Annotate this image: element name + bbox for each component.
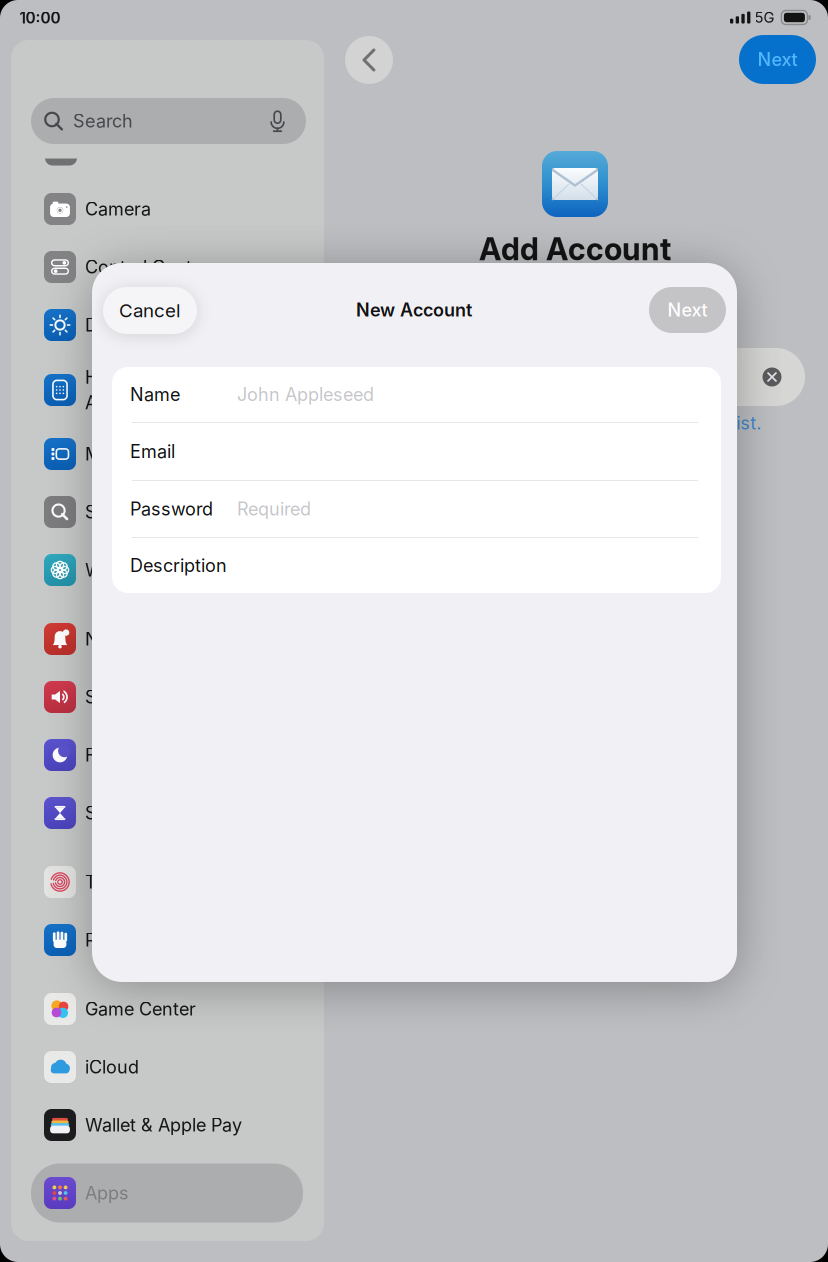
staticText: Screen Time (85, 802, 191, 824)
button[interactable]: Sounds (31, 667, 303, 726)
button[interactable]: Wallet & Apple Pay (31, 1095, 303, 1154)
staticText: Add Account (479, 230, 671, 267)
button[interactable]: Home Screen & (31, 360, 303, 419)
button[interactable]: Search (31, 98, 306, 144)
button[interactable]: Back (345, 36, 393, 84)
staticText: Touch ID & Passcode (85, 871, 266, 893)
button[interactable]: Cancel (103, 287, 197, 334)
staticText: Cancel (119, 299, 181, 322)
staticText: Wallet & Apple Pay (85, 1114, 242, 1136)
staticText: Sounds (85, 686, 151, 708)
button[interactable]: Focus (31, 725, 303, 784)
staticText: Search (73, 110, 133, 132)
staticText: Search (85, 501, 145, 523)
staticText: Focus (85, 744, 137, 766)
button[interactable]: Next (739, 35, 816, 84)
button[interactable]: Password (112, 481, 721, 537)
button[interactable]: Game Center (31, 979, 303, 1038)
staticText: Multitasking & Gestures (85, 443, 287, 465)
staticText: list. (732, 412, 761, 434)
button[interactable]: Name (112, 367, 721, 422)
staticText: John Appleseed (237, 384, 374, 405)
staticText: Description (130, 555, 227, 576)
staticText: Notifications (85, 628, 193, 650)
button[interactable]: Description (112, 538, 721, 593)
staticText: New Account (356, 299, 472, 321)
button[interactable]: Privacy & Security (31, 910, 303, 969)
staticText: Game Center (85, 998, 196, 1020)
staticText: Required (237, 498, 311, 520)
button[interactable]: Display & Brightness (31, 295, 303, 354)
staticText: 5G (755, 9, 775, 26)
button[interactable]: Search (31, 482, 303, 541)
button[interactable]: Clear text (759, 364, 785, 390)
button[interactable]: Next (649, 287, 726, 333)
button[interactable]: Touch ID & Passcode (31, 852, 303, 911)
staticText: Apps (85, 1182, 129, 1204)
button[interactable]: Multitasking & Gestures (31, 424, 303, 483)
button[interactable]: Control Center (31, 237, 303, 296)
staticText: Name (130, 384, 180, 405)
staticText: App Library (85, 392, 183, 414)
staticText: Camera (85, 198, 151, 220)
button[interactable]: Email (112, 423, 721, 480)
staticText: Email (130, 441, 175, 462)
staticText: Control Center (85, 256, 209, 278)
staticText: 10:00 (19, 9, 60, 27)
staticText: Home Screen & (85, 366, 216, 388)
staticText: iCloud (85, 1056, 139, 1078)
staticText: Password (130, 498, 213, 520)
staticText: Next (757, 49, 797, 70)
button[interactable]: Notifications (31, 609, 303, 668)
staticText: Privacy & Security (85, 929, 239, 951)
button[interactable]: Apps (31, 1163, 303, 1222)
staticText: Next (667, 299, 707, 321)
button[interactable]: Camera (31, 179, 303, 238)
staticText: Wallpaper (85, 559, 169, 581)
button[interactable]: Screen Time (31, 783, 303, 842)
button[interactable]: Wallpaper (31, 540, 303, 599)
staticText: Display & Brightness (85, 314, 261, 336)
button[interactable]: iCloud (31, 1037, 303, 1096)
